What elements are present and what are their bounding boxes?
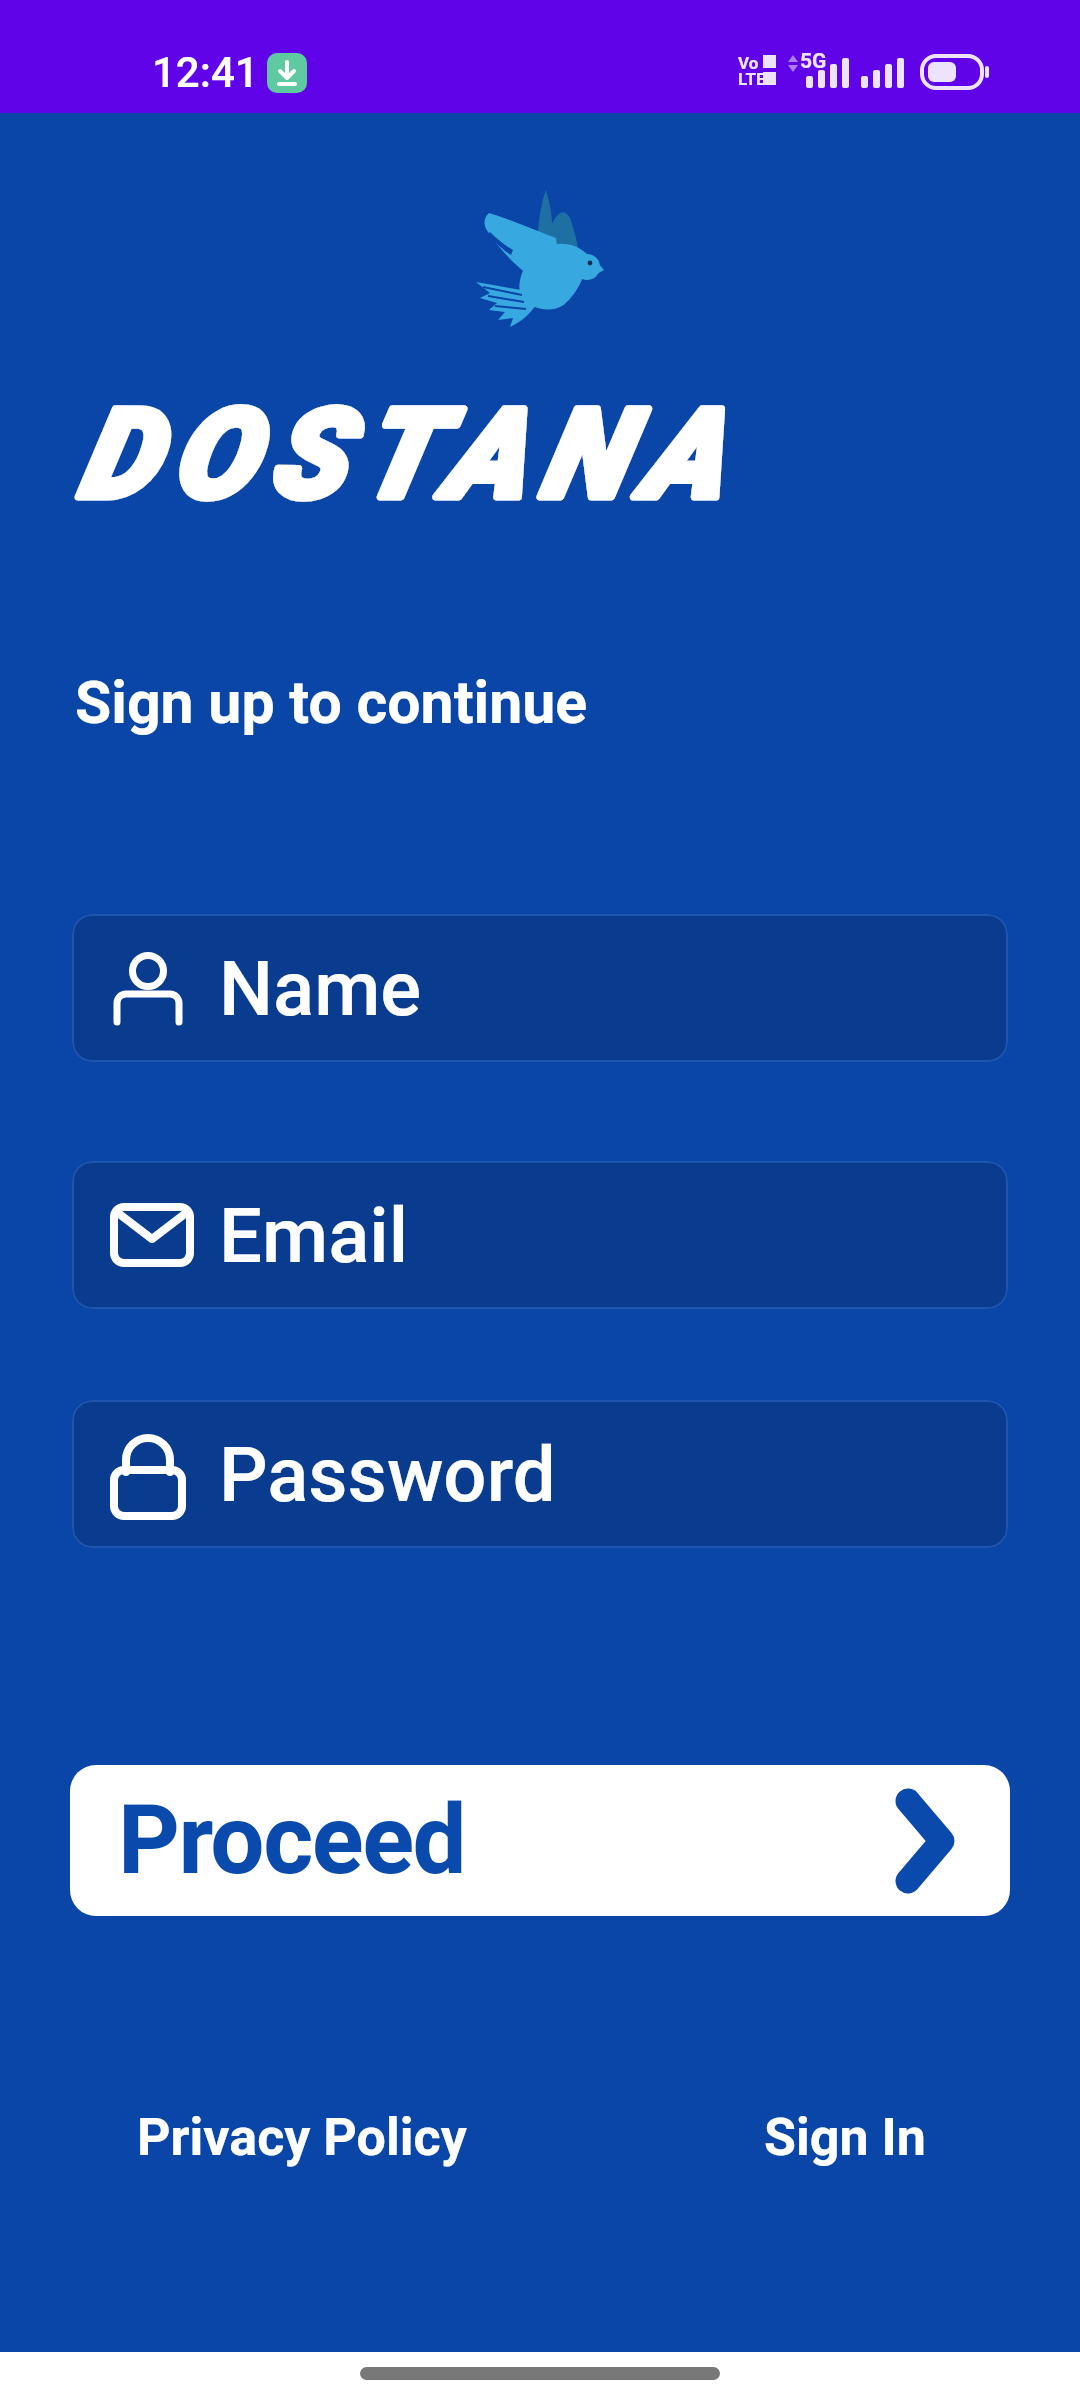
staticText: Name [219,944,422,1033]
staticText: Vo [738,53,759,73]
staticText: Proceed [118,1784,466,1897]
button[interactable]: Sign In [744,2097,946,2177]
staticText: 5G [800,49,827,74]
staticText: Sign up to continue [75,668,588,737]
staticText: LTE [738,69,766,89]
staticText: Email [219,1191,409,1280]
button[interactable]: Name [72,914,1008,1062]
button[interactable]: Privacy Policy [117,2097,487,2177]
staticText: DOSTANA [78,382,738,527]
staticText: DOSTANA [78,382,738,527]
staticText: 12:41 [152,48,259,97]
button[interactable]: Email [72,1161,1008,1309]
button[interactable]: Proceed [70,1765,1010,1916]
staticText: Password [219,1430,556,1519]
button[interactable]: Password [72,1400,1008,1548]
staticText: Privacy Policy [137,2107,467,2168]
staticText: Sign In [764,2107,926,2168]
